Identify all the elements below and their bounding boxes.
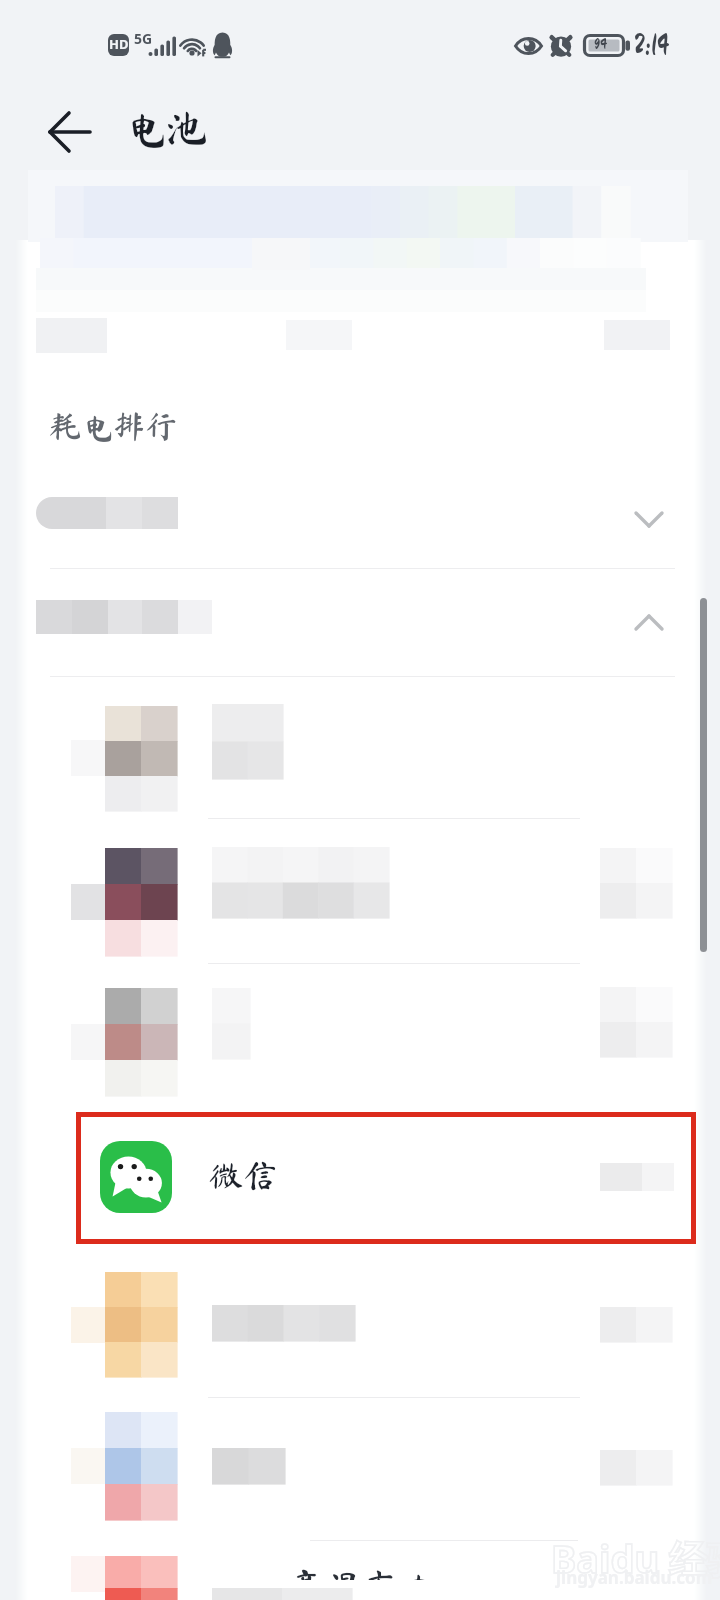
- staticText: Baidu 经验: [551, 1532, 720, 1584]
- button[interactable]: [23, 835, 700, 975]
- button[interactable]: 微信: [23, 1113, 700, 1245]
- button[interactable]: Back: [28, 90, 112, 174]
- button[interactable]: [23, 1250, 700, 1390]
- staticText: 耗电排行: [49, 410, 178, 442]
- button[interactable]: Collapse: [23, 575, 700, 673]
- button[interactable]: Expand: [23, 470, 700, 568]
- other: Collapse: [609, 592, 689, 652]
- staticText: 电池: [124, 106, 209, 148]
- staticText: 高温充电: [288, 1568, 441, 1580]
- staticText: HD: [109, 35, 129, 53]
- other: Expand: [609, 489, 689, 549]
- button[interactable]: [23, 690, 700, 830]
- staticText: 2:14: [634, 31, 670, 59]
- button[interactable]: [23, 975, 700, 1115]
- button[interactable]: [23, 1545, 700, 1600]
- staticText: 微信: [209, 1158, 277, 1192]
- button[interactable]: [23, 1400, 700, 1540]
- staticText: 5G: [134, 29, 153, 48]
- staticText: 94: [594, 36, 608, 52]
- staticText: jingyan.baidu.com: [556, 1566, 713, 1589]
